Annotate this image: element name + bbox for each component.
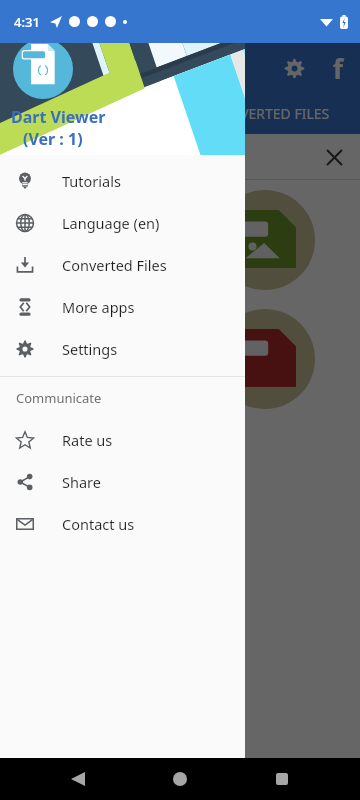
staticText: 4:31 [14,13,40,31]
staticText: Dart Viewer [8,55,113,81]
button[interactable] [0,180,360,299]
button[interactable]: Tutorials [0,160,245,202]
staticText: Tutorials [62,171,121,191]
staticText: Rate us [62,430,113,450]
button[interactable]: Recents [258,758,306,800]
button[interactable]: Settings [0,328,245,370]
button[interactable]: More apps [0,286,245,328]
staticText: Converted Files [62,255,167,275]
button[interactable] [0,299,360,418]
staticText: CONVERTED FILES [210,104,330,123]
staticText: Settings [62,339,118,359]
button[interactable]: Settings [272,46,316,90]
button[interactable]: Language (en) [0,202,245,244]
button[interactable]: Contact us [0,503,245,545]
button[interactable]: Home [156,758,204,800]
staticText: Communicate [16,389,102,407]
button[interactable]: Clear [314,137,354,177]
button[interactable]: SCAN [0,93,180,134]
staticText: Contact us [62,514,135,534]
button[interactable]: Rate us [0,419,245,461]
staticText: Dart Viewer [11,106,106,128]
staticText: (Ver : 1) [23,128,83,150]
staticText: More apps [62,297,135,317]
staticText: Language (en) [62,213,160,233]
staticText: SCAN [72,104,109,123]
button[interactable]: Facebook [316,46,360,90]
staticText: f [333,51,344,86]
button[interactable]: CONVERTED FILES [180,93,360,134]
staticText: Search [12,147,60,167]
button[interactable]: Converted Files [0,244,245,286]
staticText: Share [62,472,101,492]
button[interactable]: Share [0,461,245,503]
button[interactable]: Back [54,758,102,800]
